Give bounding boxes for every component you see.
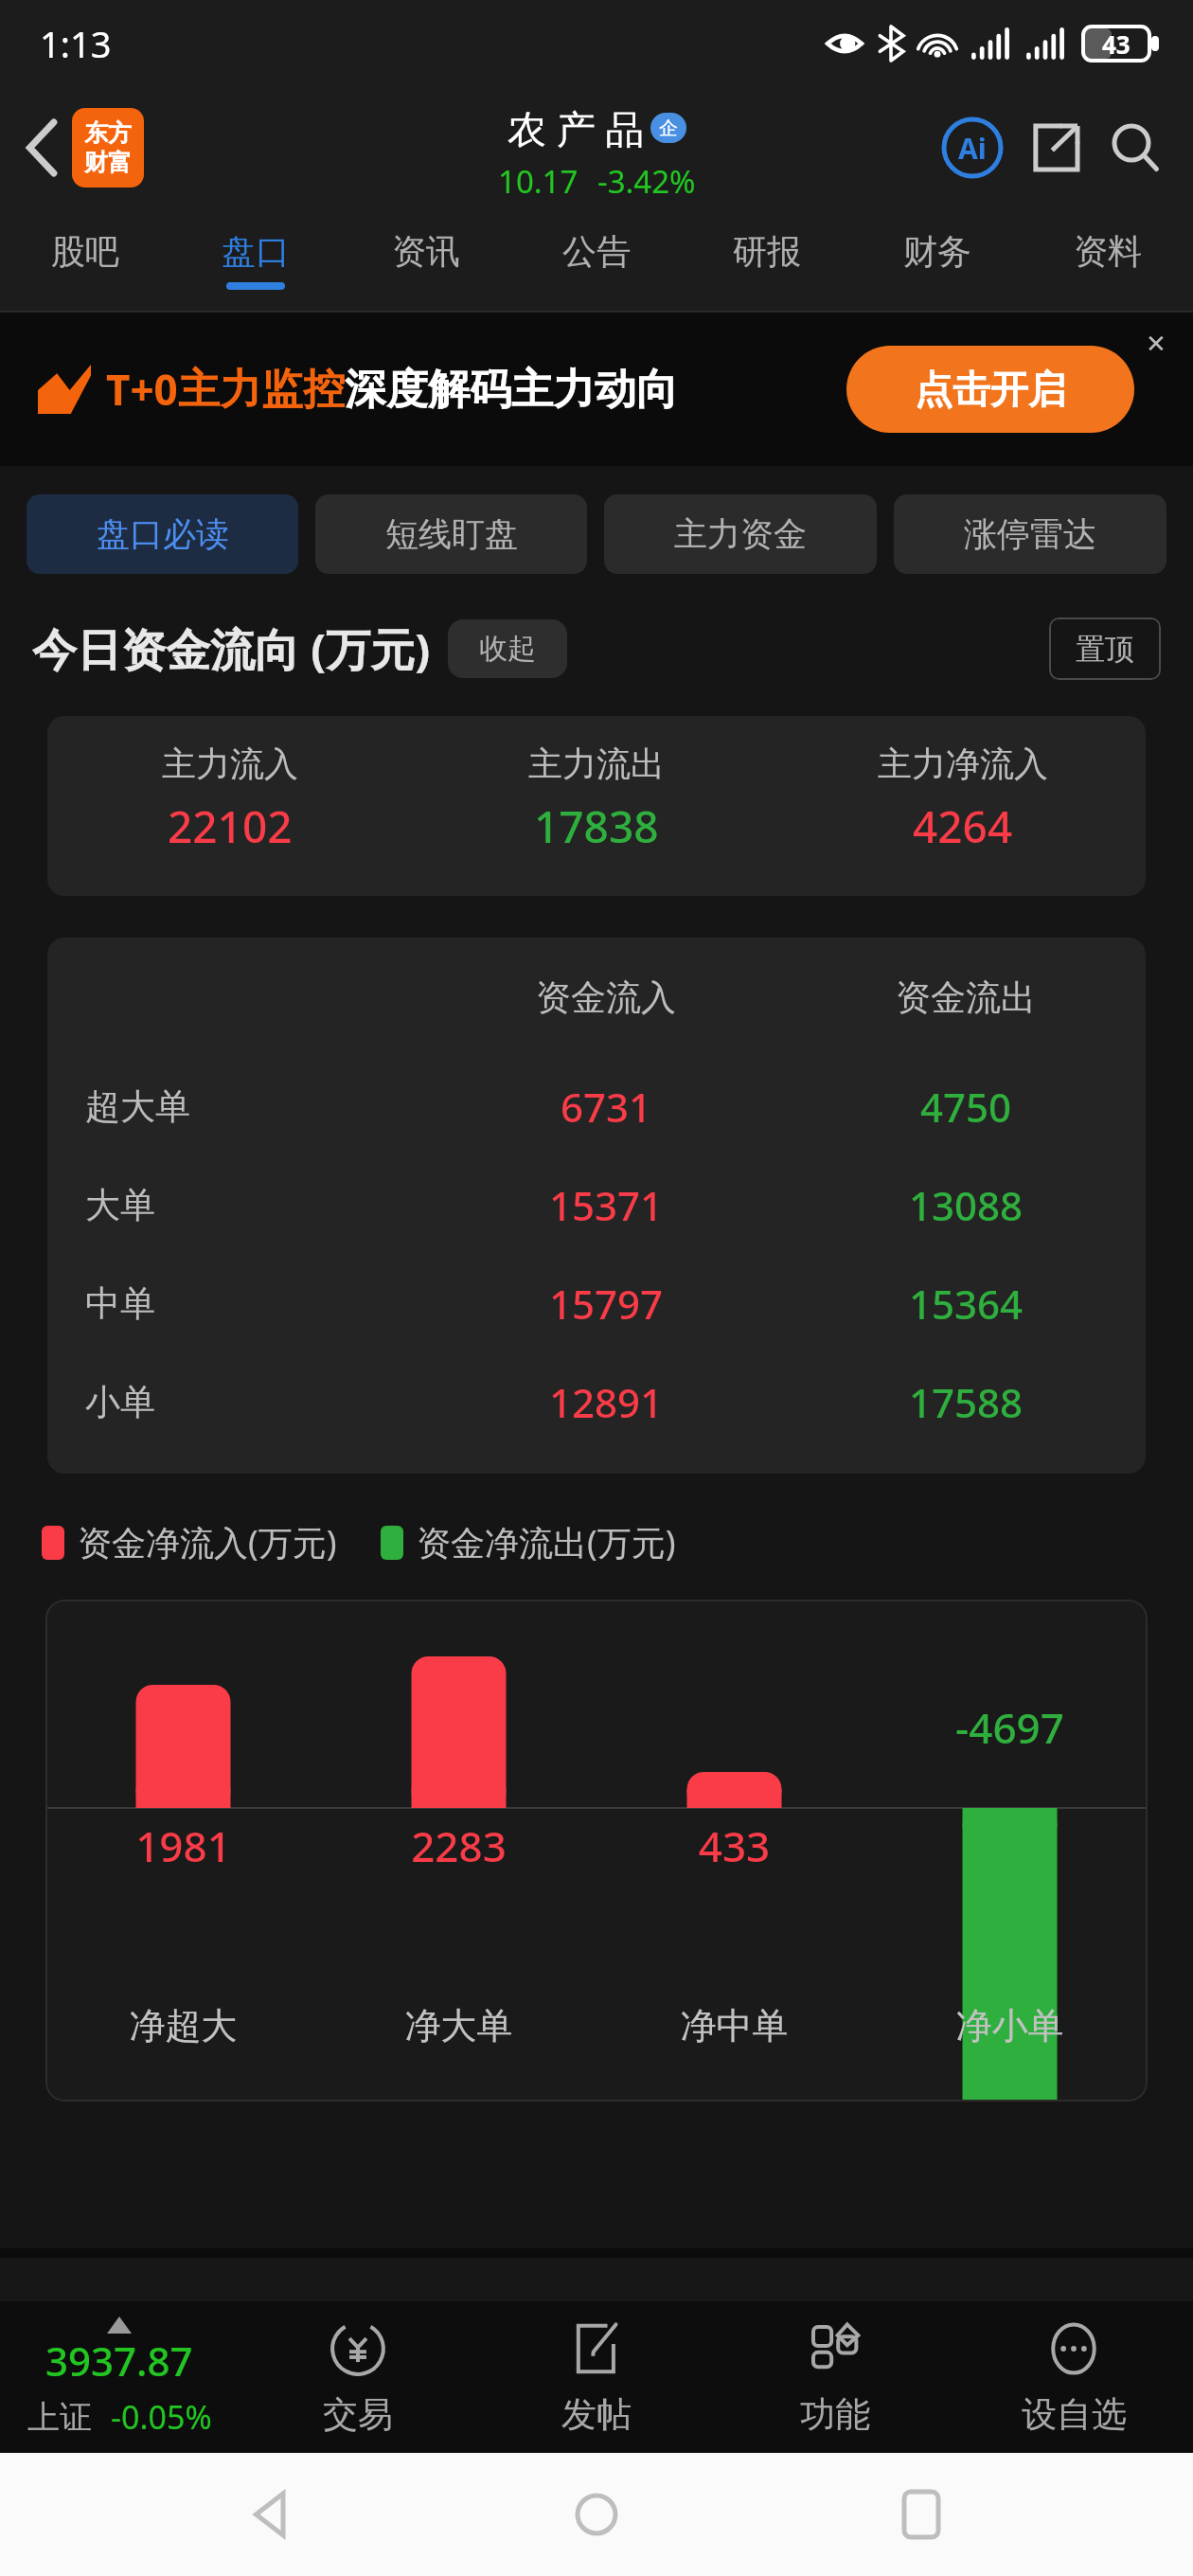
staticText: 净超大: [45, 2003, 321, 2048]
staticText: 4750: [786, 1080, 1146, 1134]
button[interactable]: 涨停雷达: [894, 494, 1166, 574]
button[interactable]: Close ad: [1131, 318, 1182, 369]
staticText: 东方: [84, 118, 132, 148]
staticText: 发帖: [561, 2392, 632, 2437]
staticText: 功能: [800, 2392, 870, 2437]
button[interactable]: 置顶: [1049, 617, 1161, 680]
staticText: 17588: [786, 1375, 1146, 1429]
button[interactable]: Search: [1106, 118, 1165, 177]
staticText: 深度解码: [345, 364, 511, 416]
staticText: -3.42%: [597, 160, 696, 203]
button[interactable]: 盘口必读: [27, 494, 298, 574]
staticText: 主力资金: [674, 513, 807, 555]
button[interactable]: Share: [1026, 118, 1085, 177]
staticText: -0.05%: [111, 2395, 212, 2439]
button[interactable]: 财务: [852, 208, 1023, 311]
button[interactable]: T+0: [0, 313, 1193, 466]
staticText: 资金流入: [426, 975, 786, 1020]
staticText: 主力动向: [511, 364, 678, 416]
staticText: 433: [596, 1817, 872, 1874]
staticText: 资料: [1074, 230, 1142, 273]
staticText: 净小单: [872, 2003, 1148, 2048]
staticText: 1981: [45, 1817, 321, 1874]
button[interactable]: 股吧: [0, 208, 170, 311]
staticText: 10.17: [498, 160, 579, 203]
button[interactable]: 主力资金: [604, 494, 877, 574]
button[interactable]: 收起: [448, 619, 567, 678]
staticText: 设自选: [1022, 2392, 1127, 2437]
staticText: 主力净流入: [878, 742, 1048, 785]
staticText: 13088: [786, 1178, 1146, 1232]
button[interactable]: Back: [19, 100, 151, 195]
button[interactable]: 资讯: [341, 208, 511, 311]
staticText: 盘口: [222, 230, 290, 273]
staticText: 15364: [786, 1277, 1146, 1331]
staticText: 4264: [913, 796, 1013, 856]
staticText: 点击开启: [915, 366, 1066, 413]
button[interactable]: 点击开启: [846, 346, 1134, 433]
staticText: 上证: [27, 2397, 92, 2438]
staticText: 1:13: [40, 19, 112, 68]
staticText: 财务: [903, 230, 971, 273]
staticText: 主力监控: [178, 364, 345, 416]
button[interactable]: 研报: [682, 208, 852, 311]
button[interactable]: 发帖: [477, 2301, 716, 2453]
staticText: 企: [659, 116, 678, 140]
staticText: 大单: [85, 1183, 155, 1227]
button[interactable]: 盘口: [170, 208, 341, 311]
button[interactable]: 设自选: [954, 2301, 1193, 2453]
staticText: 今日资金流向 (万元): [32, 618, 431, 679]
staticText: 15371: [426, 1178, 786, 1232]
staticText: 农 产 品: [507, 101, 645, 154]
staticText: 股吧: [51, 230, 119, 273]
staticText: 2283: [321, 1817, 596, 1874]
button[interactable]: 功能: [716, 2301, 954, 2453]
staticText: 资金净流入(万元): [78, 1519, 337, 1565]
button[interactable]: Recents: [869, 2462, 973, 2567]
staticText: 12891: [426, 1375, 786, 1429]
staticText: 资金流出: [786, 975, 1146, 1020]
staticText: 43: [1102, 27, 1131, 61]
button[interactable]: 主力流入: [47, 716, 1146, 896]
staticText: 净中单: [596, 2003, 872, 2048]
button[interactable]: 3937.87: [0, 2317, 239, 2439]
staticText: 22102: [168, 796, 293, 856]
staticText: 净大单: [321, 2003, 596, 2048]
button[interactable]: 公告: [511, 208, 682, 311]
staticText: 主力流入: [162, 742, 298, 785]
staticText: 17838: [534, 796, 659, 856]
staticText: 短线盯盘: [385, 513, 518, 555]
staticText: 超大单: [85, 1084, 190, 1129]
staticText: 15797: [426, 1277, 786, 1331]
button[interactable]: 交易: [239, 2301, 477, 2453]
staticText: 公告: [562, 230, 631, 273]
staticText: 置顶: [1076, 631, 1134, 668]
staticText: 中单: [85, 1281, 155, 1326]
staticText: 研报: [733, 230, 801, 273]
staticText: [872, 1817, 1148, 1874]
staticText: 3937.87: [45, 2334, 193, 2388]
button[interactable]: 短线盯盘: [315, 494, 587, 574]
staticText: T+0: [106, 361, 178, 418]
staticText: 财富: [84, 148, 132, 177]
staticText: 盘口必读: [97, 513, 229, 555]
button[interactable]: Back: [221, 2462, 325, 2567]
staticText: Ai: [958, 129, 987, 168]
staticText: ✕: [1146, 330, 1166, 358]
button[interactable]: 资金流入: [47, 938, 1146, 1474]
staticText: 收起: [479, 631, 536, 667]
button[interactable]: AI: [941, 116, 1004, 179]
staticText: 主力流出: [528, 742, 665, 785]
staticText: 交易: [323, 2392, 393, 2437]
button[interactable]: 资料: [1023, 208, 1193, 311]
staticText: 资金净流出(万元): [417, 1519, 676, 1565]
staticText: -4697: [872, 1699, 1148, 1756]
button[interactable]: 1981: [45, 1600, 1148, 2102]
staticText: 6731: [426, 1080, 786, 1134]
button[interactable]: Home: [544, 2462, 649, 2567]
staticText: 资讯: [392, 230, 460, 273]
staticText: 涨停雷达: [964, 513, 1096, 555]
staticText: 小单: [85, 1380, 155, 1424]
